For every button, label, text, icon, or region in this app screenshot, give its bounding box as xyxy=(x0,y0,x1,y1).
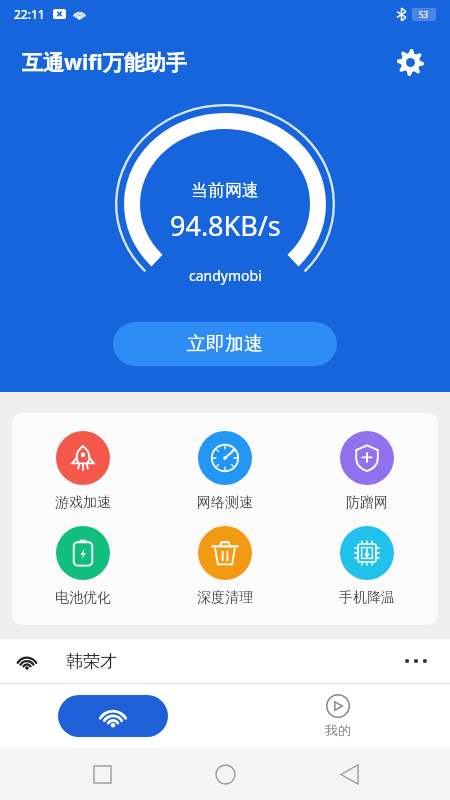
staticText: 防蹭网 xyxy=(346,494,388,512)
staticText: 电池优化 xyxy=(55,589,111,607)
button[interactable]: 防蹭网 xyxy=(296,431,438,512)
button[interactable]: 深度清理 xyxy=(154,526,296,607)
button[interactable]: 手机降温 xyxy=(296,526,438,607)
button[interactable]: 网络测速 xyxy=(154,431,296,512)
staticText: 网络测速 xyxy=(197,494,253,512)
button[interactable]: More options xyxy=(398,646,434,676)
button[interactable]: Settings xyxy=(390,42,430,82)
button[interactable]: Home xyxy=(203,752,247,796)
staticText: 53 xyxy=(419,9,429,20)
staticText: candymobi xyxy=(189,266,262,285)
staticText: 深度清理 xyxy=(197,589,253,607)
button[interactable]: 立即加速 xyxy=(113,322,337,366)
staticText: 立即加速 xyxy=(187,332,263,356)
staticText: 94.8KB/s xyxy=(170,207,281,244)
staticText: 互通wifi万能助手 xyxy=(22,48,187,77)
staticText: 22:11 xyxy=(14,6,45,22)
staticText: 当前网速 xyxy=(191,180,259,201)
button[interactable]: 韩荣才 xyxy=(0,639,450,683)
button[interactable]: 游戏加速 xyxy=(12,431,154,512)
button[interactable]: Recents xyxy=(80,752,124,796)
button[interactable]: Back xyxy=(327,752,371,796)
button[interactable]: WiFi xyxy=(58,695,168,737)
staticText: 韩荣才 xyxy=(66,651,117,672)
staticText: 游戏加速 xyxy=(55,494,111,512)
staticText: 手机降温 xyxy=(339,589,395,607)
button[interactable]: 我的 xyxy=(298,694,378,738)
staticText: 我的 xyxy=(325,722,351,738)
button[interactable]: 电池优化 xyxy=(12,526,154,607)
